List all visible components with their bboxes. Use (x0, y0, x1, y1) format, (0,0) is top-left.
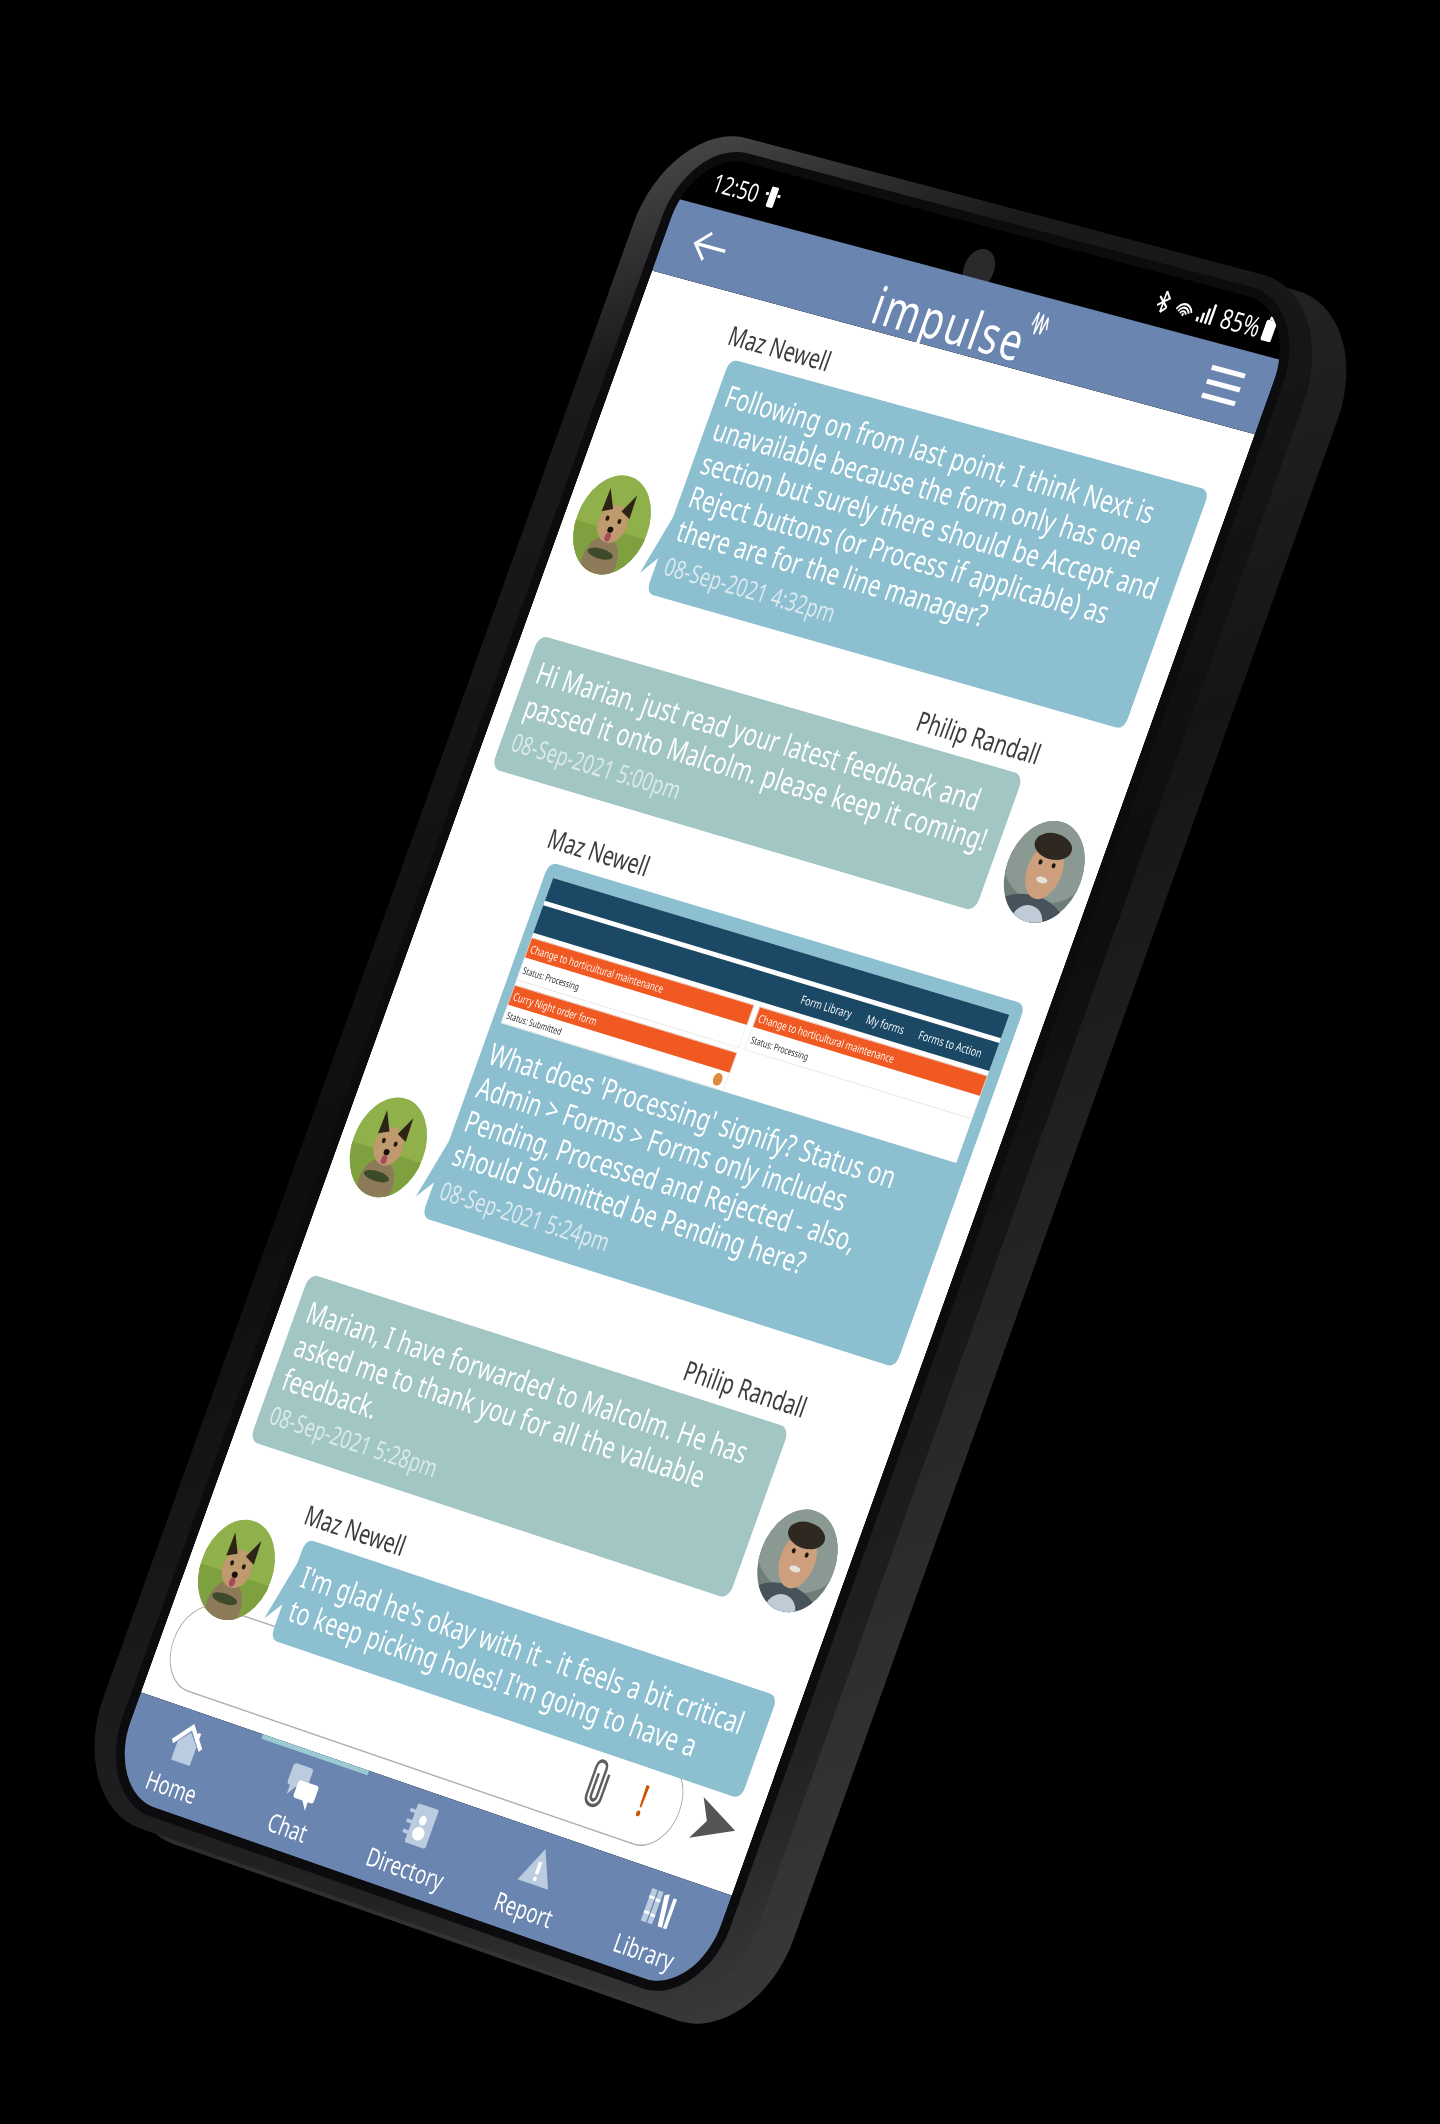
staticText: Report (490, 1883, 558, 1936)
staticText: Maz Newell (543, 819, 655, 884)
staticText: What does 'Processing' signify? Status o… (447, 1032, 953, 1316)
button[interactable]: Home (106, 1692, 257, 1831)
staticText: 85% (1215, 299, 1267, 345)
button[interactable]: Library (575, 1854, 732, 1996)
staticText: Change to horticultural maintenance (528, 941, 666, 996)
staticText: Change to horticultural maintenance (756, 1010, 897, 1066)
button[interactable]: Menu (1184, 347, 1263, 424)
staticText: Curry Night order form (511, 989, 600, 1029)
staticText: 08-Sep-2021 5:24pm (435, 1173, 615, 1260)
staticText: Chat (263, 1804, 313, 1851)
staticText: Hi Marian. just read your latest feedbac… (519, 651, 1008, 860)
button[interactable]: Report (456, 1813, 611, 1954)
staticText: Maz Newell (300, 1496, 411, 1564)
button[interactable]: Attach file (158, 1596, 696, 1855)
button[interactable]: Following on from last point, I think Ne… (634, 355, 1210, 730)
staticText: Philip Randall (524, 590, 1046, 772)
button[interactable]: Chat (221, 1732, 373, 1872)
staticText: Directory (361, 1838, 449, 1898)
staticText: 08-Sep-2021 5:28pm (265, 1397, 443, 1486)
staticText: Following on from last point, I think Ne… (671, 375, 1193, 678)
staticText: Philip Randall (295, 1229, 812, 1426)
staticText: 12:50 (708, 165, 765, 210)
button[interactable]: Attach file (565, 1745, 632, 1823)
button[interactable]: Back (670, 209, 750, 285)
staticText: Status: Processing (521, 963, 581, 993)
button[interactable]: Marian, I have forwarded to Malcolm. He … (249, 1273, 790, 1599)
button[interactable]: Directory (338, 1772, 491, 1913)
button[interactable]: Mark urgent (610, 1760, 677, 1838)
staticText: Library (609, 1924, 680, 1979)
staticText: Status: Submitted (505, 1008, 564, 1037)
staticText: Maz Newell (723, 317, 837, 379)
staticText: Forms to Action (916, 1026, 984, 1061)
staticText: Form Library (799, 991, 855, 1022)
staticText: 08-Sep-2021 4:32pm (659, 548, 841, 630)
button[interactable]: Form Library (410, 858, 1026, 1368)
staticText: My forms (864, 1011, 907, 1038)
staticText: I'm glad he's okay with it - it feels a … (283, 1555, 762, 1781)
staticText: 08-Sep-2021 5:00pm (507, 724, 687, 807)
button[interactable]: I'm glad he's okay with it - it feels a … (258, 1534, 778, 1799)
staticText: ! (629, 1769, 658, 1830)
button[interactable]: Hi Marian. just read your latest feedbac… (491, 635, 1024, 912)
staticText: impulse (863, 267, 1037, 377)
staticText: Home (141, 1762, 202, 1812)
staticText: Status: Processing (749, 1033, 811, 1063)
staticText: Marian, I have forwarded to Malcolm. He … (277, 1290, 774, 1547)
button[interactable]: Send message (674, 1775, 758, 1873)
